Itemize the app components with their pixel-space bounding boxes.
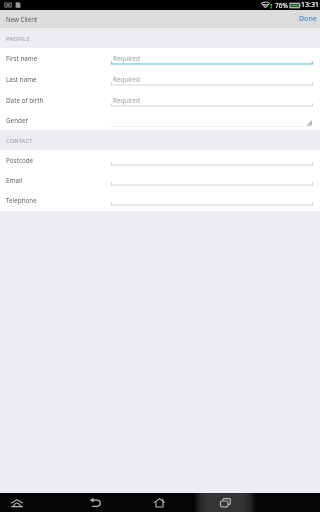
staticText: New Client	[6, 15, 38, 23]
button[interactable]: Gender	[0, 111, 320, 130]
staticText: Required	[113, 54, 140, 63]
staticText: Done	[299, 14, 317, 24]
staticText: Postcode	[6, 156, 34, 165]
staticText: Required	[113, 96, 140, 105]
staticText: Telephone	[6, 196, 37, 205]
button[interactable]: Email	[0, 170, 320, 190]
staticText: 76%	[275, 1, 288, 10]
staticText: Email	[6, 176, 23, 185]
staticText: Date of birth	[6, 96, 44, 105]
staticText: Last name	[6, 75, 37, 84]
button[interactable]: Hide keyboard	[7, 493, 26, 512]
staticText: First name	[6, 54, 38, 63]
staticText: Required	[113, 75, 140, 84]
button[interactable]: Last name	[0, 69, 320, 90]
button[interactable]: Home	[150, 493, 169, 512]
button[interactable]: Back	[86, 493, 105, 512]
button[interactable]: Done	[294, 10, 320, 28]
button[interactable]: First name	[0, 48, 320, 69]
button[interactable]: Date of birth	[0, 90, 320, 111]
button[interactable]: Postcode	[0, 150, 320, 170]
staticText: PROFILE	[6, 35, 30, 42]
staticText: Gender	[6, 116, 29, 125]
staticText: 13:31	[301, 0, 319, 10]
button[interactable]: Recent apps	[194, 493, 256, 512]
staticText: CONTACT	[6, 137, 33, 144]
button[interactable]: Telephone	[0, 190, 320, 210]
